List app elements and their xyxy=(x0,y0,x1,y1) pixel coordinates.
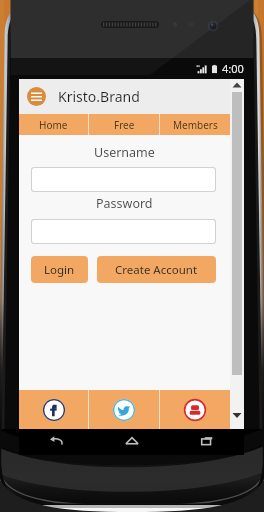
staticText: Members xyxy=(173,118,218,132)
button[interactable]: Home xyxy=(19,114,88,135)
button[interactable]: Open navigation menu xyxy=(27,87,46,106)
staticText: Create Account xyxy=(115,262,198,278)
staticText: Kristo.Brand xyxy=(58,87,140,106)
button[interactable]: Login xyxy=(31,256,88,283)
button[interactable]: Free xyxy=(89,114,159,135)
staticText: Login xyxy=(44,262,75,278)
button[interactable]: Facebook xyxy=(19,390,88,429)
staticText: Password xyxy=(96,195,153,212)
button[interactable]: Scroll xyxy=(230,79,244,429)
staticText: Home xyxy=(39,118,68,132)
staticText: Username xyxy=(94,144,155,161)
staticText: 4:00 xyxy=(222,61,244,76)
button[interactable]: Home xyxy=(94,429,169,455)
staticText: Free xyxy=(114,118,135,132)
button[interactable]: Members xyxy=(160,114,230,135)
button[interactable]: Create Account xyxy=(97,256,216,283)
button[interactable]: Back xyxy=(19,429,94,455)
button[interactable] xyxy=(31,219,216,244)
button[interactable] xyxy=(31,167,216,192)
button[interactable]: Twitter xyxy=(89,390,159,429)
button[interactable]: YouTube xyxy=(160,390,230,429)
button[interactable]: Recent apps xyxy=(169,429,244,455)
